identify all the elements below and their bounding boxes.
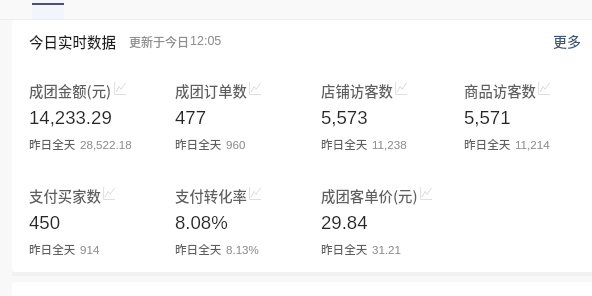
staticText: 昨日全天	[321, 241, 368, 258]
button[interactable]: 成团客单价(元)	[321, 185, 464, 258]
staticText: 28,522.18	[80, 138, 132, 151]
staticText: 477	[175, 107, 207, 128]
button[interactable]: 成团金额(元)	[29, 80, 175, 153]
staticText: 昨日全天	[175, 241, 222, 258]
button[interactable]: 支付转化率	[175, 185, 321, 258]
button[interactable]: 商品访客数	[464, 80, 592, 153]
staticText: 店铺访客数	[321, 80, 393, 101]
button[interactable]: 支付买家数	[29, 185, 175, 258]
button[interactable]: 更多	[549, 27, 585, 55]
staticText: 5,573	[321, 107, 368, 128]
staticText: 成团客单价(元)	[321, 185, 418, 206]
staticText: 成团订单数	[175, 80, 247, 101]
staticText: 昨日全天	[321, 136, 368, 153]
staticText: 14,233.29	[29, 107, 112, 128]
staticText: 更多	[553, 31, 581, 51]
staticText: 昨日全天	[464, 136, 511, 153]
staticText: 支付转化率	[175, 185, 247, 206]
staticText: 商品访客数	[464, 80, 536, 101]
button[interactable]: 成团订单数	[175, 80, 321, 153]
staticText: 914	[80, 243, 100, 256]
staticText: 12:05	[190, 34, 222, 48]
staticText: 更新于今日	[129, 33, 190, 50]
button[interactable]: 店铺访客数	[321, 80, 464, 153]
staticText: 450	[29, 212, 61, 233]
staticText: 11,214	[515, 138, 550, 151]
staticText: 31.21	[372, 243, 402, 256]
staticText: 29.84	[321, 212, 368, 233]
staticText: 昨日全天	[29, 241, 76, 258]
staticText: 昨日全天	[29, 136, 76, 153]
staticText: 昨日全天	[175, 136, 222, 153]
staticText: 支付买家数	[29, 185, 101, 206]
staticText: 今日实时数据	[29, 31, 116, 52]
staticText: 8.08%	[175, 212, 228, 233]
staticText: 5,571	[464, 107, 511, 128]
button[interactable]	[32, 0, 64, 19]
staticText: 成团金额(元)	[29, 80, 112, 101]
staticText: 11,238	[372, 138, 407, 151]
staticText: 8.13%	[226, 243, 259, 256]
staticText: 960	[226, 138, 246, 151]
